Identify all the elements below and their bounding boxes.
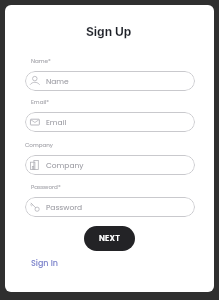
button[interactable]: Name	[25, 71, 195, 91]
staticText: Name*	[31, 57, 51, 65]
button[interactable]: Password	[25, 197, 195, 217]
staticText: Company	[25, 141, 53, 149]
staticText: NEXT	[99, 233, 121, 244]
button[interactable]: NEXT	[84, 226, 135, 251]
button[interactable]: Company	[25, 155, 195, 175]
staticText: Password*	[31, 183, 61, 191]
staticText: Email*	[31, 98, 49, 106]
staticText: Name	[46, 76, 69, 86]
staticText: Password	[46, 202, 83, 212]
staticText: Sign Up	[86, 24, 132, 39]
staticText: Email	[46, 117, 67, 127]
button[interactable]: Sign In	[31, 258, 58, 269]
button[interactable]: Email	[25, 112, 195, 132]
staticText: Company	[46, 160, 84, 170]
